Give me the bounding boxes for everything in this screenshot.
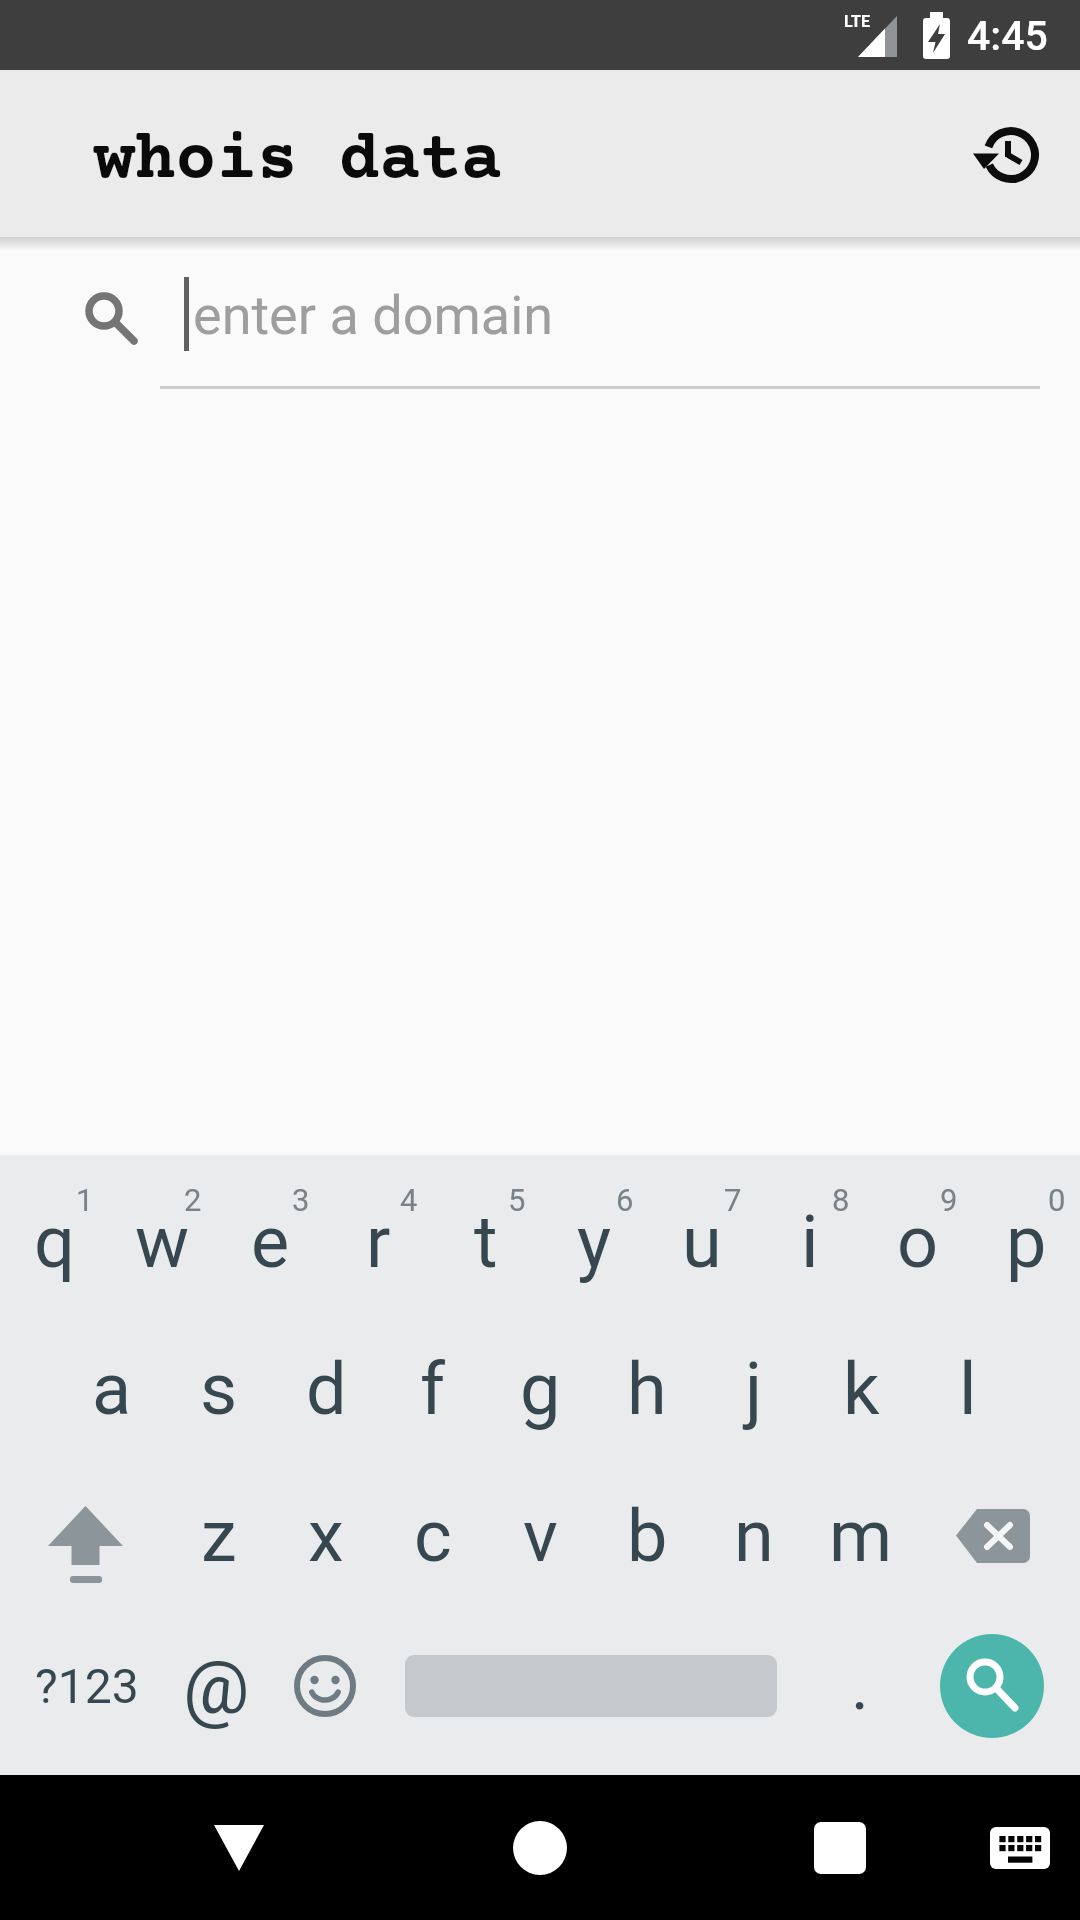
button[interactable] — [405, 1645, 777, 1727]
button[interactable]: w — [109, 1172, 215, 1312]
staticText: n — [734, 1494, 774, 1578]
staticText: z — [201, 1494, 237, 1578]
button[interactable]: x — [273, 1466, 379, 1606]
staticText: 8 — [832, 1182, 850, 1218]
button[interactable]: @ — [158, 1612, 274, 1762]
staticText: r — [366, 1200, 391, 1284]
staticText: 3 — [292, 1182, 310, 1218]
staticText: @ — [183, 1644, 250, 1731]
staticText: h — [627, 1347, 667, 1431]
button[interactable]: s — [166, 1319, 272, 1459]
staticText: i — [801, 1200, 819, 1284]
button[interactable]: q — [1, 1172, 107, 1312]
button[interactable]: f — [380, 1319, 486, 1459]
button[interactable]: l — [915, 1319, 1021, 1459]
staticText: 1 — [76, 1182, 94, 1218]
button[interactable]: o — [865, 1172, 971, 1312]
staticText: v — [523, 1494, 558, 1578]
button[interactable]: z — [166, 1466, 272, 1606]
button[interactable] — [960, 1790, 1080, 1910]
staticText: m — [829, 1494, 893, 1578]
staticText: a — [92, 1347, 132, 1431]
staticText: c — [414, 1494, 452, 1578]
staticText: g — [520, 1347, 561, 1431]
staticText: enter a domain — [193, 284, 554, 347]
button[interactable]: j — [701, 1319, 807, 1459]
staticText: 5 — [508, 1182, 526, 1218]
button[interactable]: h — [594, 1319, 700, 1459]
button[interactable] — [925, 1466, 1065, 1606]
button[interactable]: ?123 — [22, 1616, 152, 1756]
staticText: k — [843, 1347, 880, 1431]
staticText: t — [474, 1200, 498, 1284]
button[interactable]: k — [808, 1319, 914, 1459]
button[interactable] — [270, 1616, 380, 1756]
button[interactable]: p — [973, 1172, 1079, 1312]
staticText: 9 — [940, 1182, 958, 1218]
staticText: 4 — [400, 1182, 418, 1218]
staticText: 2 — [184, 1182, 202, 1218]
button[interactable]: . — [807, 1616, 913, 1756]
button[interactable] — [938, 1632, 1046, 1740]
button[interactable] — [180, 1790, 300, 1910]
staticText: ?123 — [35, 1658, 139, 1714]
button[interactable]: e — [217, 1172, 323, 1312]
button[interactable]: c — [380, 1466, 486, 1606]
staticText: whois data — [94, 124, 502, 200]
button[interactable]: g — [487, 1319, 593, 1459]
staticText: 0 — [1048, 1182, 1066, 1218]
staticText: j — [745, 1347, 763, 1431]
staticText: e — [251, 1200, 290, 1284]
button[interactable]: b — [594, 1466, 700, 1606]
button[interactable]: m — [808, 1466, 914, 1606]
staticText: 7 — [724, 1182, 742, 1218]
button[interactable]: d — [273, 1319, 379, 1459]
button[interactable]: v — [487, 1466, 593, 1606]
staticText: s — [200, 1347, 238, 1431]
button[interactable] — [480, 1790, 600, 1910]
staticText: p — [1006, 1200, 1047, 1284]
staticText: y — [577, 1200, 612, 1284]
staticText: x — [308, 1494, 344, 1578]
staticText: 4:45 — [967, 12, 1048, 60]
button[interactable] — [955, 100, 1065, 210]
button[interactable]: r — [325, 1172, 431, 1312]
button[interactable]: n — [701, 1466, 807, 1606]
staticText: w — [135, 1200, 190, 1284]
button[interactable] — [780, 1790, 900, 1910]
staticText: d — [306, 1347, 347, 1431]
staticText: b — [627, 1494, 668, 1578]
staticText: . — [851, 1646, 869, 1726]
staticText: o — [897, 1200, 939, 1284]
staticText: u — [682, 1200, 722, 1284]
button[interactable]: a — [59, 1319, 165, 1459]
button[interactable]: i — [757, 1172, 863, 1312]
staticText: q — [34, 1200, 75, 1284]
button[interactable]: u — [649, 1172, 755, 1312]
button[interactable]: t — [433, 1172, 539, 1312]
button[interactable] — [20, 1466, 160, 1606]
button[interactable] — [60, 250, 1040, 390]
staticText: l — [959, 1347, 977, 1431]
button[interactable]: y — [541, 1172, 647, 1312]
staticText: 6 — [616, 1182, 634, 1218]
staticText: f — [420, 1347, 446, 1431]
staticText: LTE — [844, 12, 870, 31]
